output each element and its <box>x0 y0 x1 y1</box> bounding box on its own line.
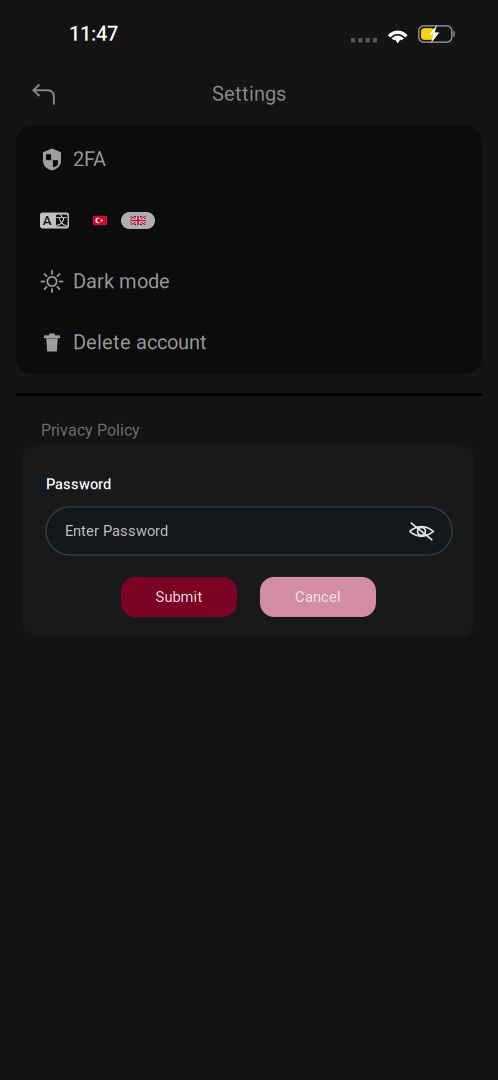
staticText: 11:47 <box>69 22 118 46</box>
button[interactable]: A <box>16 190 482 251</box>
staticText: 2FA <box>73 148 106 171</box>
staticText: Enter Password <box>65 522 168 539</box>
button[interactable]: Submit <box>121 577 237 617</box>
staticText: Dark mode <box>73 270 170 293</box>
staticText: Cancel <box>295 588 341 605</box>
button[interactable]: Show password <box>408 519 435 542</box>
staticText: Submit <box>155 588 202 605</box>
button[interactable]: 2FA <box>16 129 482 190</box>
staticText: Delete account <box>73 331 207 354</box>
staticText: Settings <box>212 82 286 106</box>
button[interactable]: Delete account <box>16 312 482 373</box>
staticText: 文 <box>56 213 68 228</box>
staticText: A <box>43 213 52 228</box>
staticText: Privacy Policy <box>41 421 140 440</box>
button[interactable]: Cancel <box>260 577 376 617</box>
button[interactable]: Back <box>22 72 66 116</box>
staticText: Password <box>46 476 111 493</box>
button[interactable]: Dark mode <box>16 251 482 312</box>
